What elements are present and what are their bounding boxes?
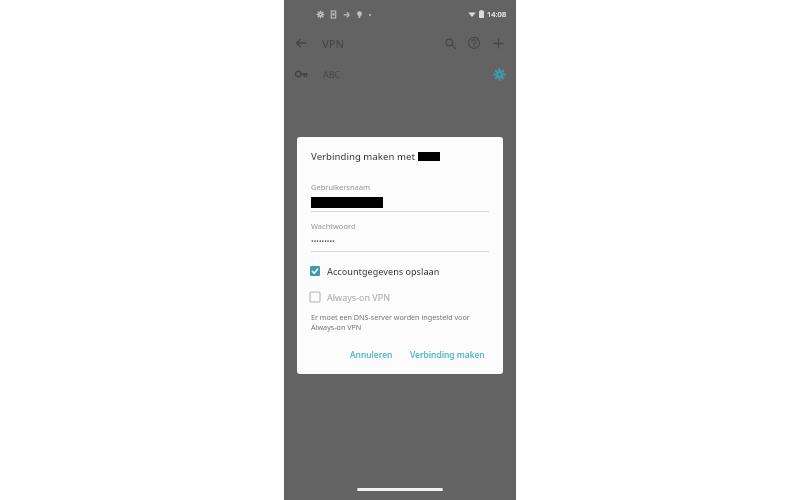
button[interactable]: Back	[290, 32, 312, 54]
staticText: •••••••••	[311, 237, 335, 247]
button[interactable]: VPN settings	[489, 64, 509, 84]
button[interactable]: Annuleren	[343, 345, 400, 365]
button[interactable]: ABC	[284, 58, 516, 90]
staticText: ABC	[323, 68, 341, 80]
staticText: Gebruikersnaam	[311, 182, 370, 192]
button[interactable]: Help	[462, 31, 486, 55]
button[interactable]: Search	[438, 31, 462, 55]
staticText: Annuleren	[350, 349, 393, 361]
button[interactable]: Accountgegevens opslaan	[310, 265, 440, 277]
button[interactable]: Verbinding maken	[403, 345, 492, 365]
staticText: 14:08	[487, 9, 507, 19]
staticText: VPN	[322, 36, 345, 51]
staticText: Verbinding maken met	[311, 150, 418, 163]
staticText: Always-on VPN	[327, 291, 391, 303]
staticText: Accountgegevens opslaan	[327, 265, 440, 277]
button[interactable]: Add VPN	[486, 31, 510, 55]
staticText: Wachtwoord	[311, 221, 356, 231]
staticText: Verbinding maken	[410, 349, 485, 361]
staticText: Er moet een DNS-server worden ingesteld …	[311, 312, 470, 332]
